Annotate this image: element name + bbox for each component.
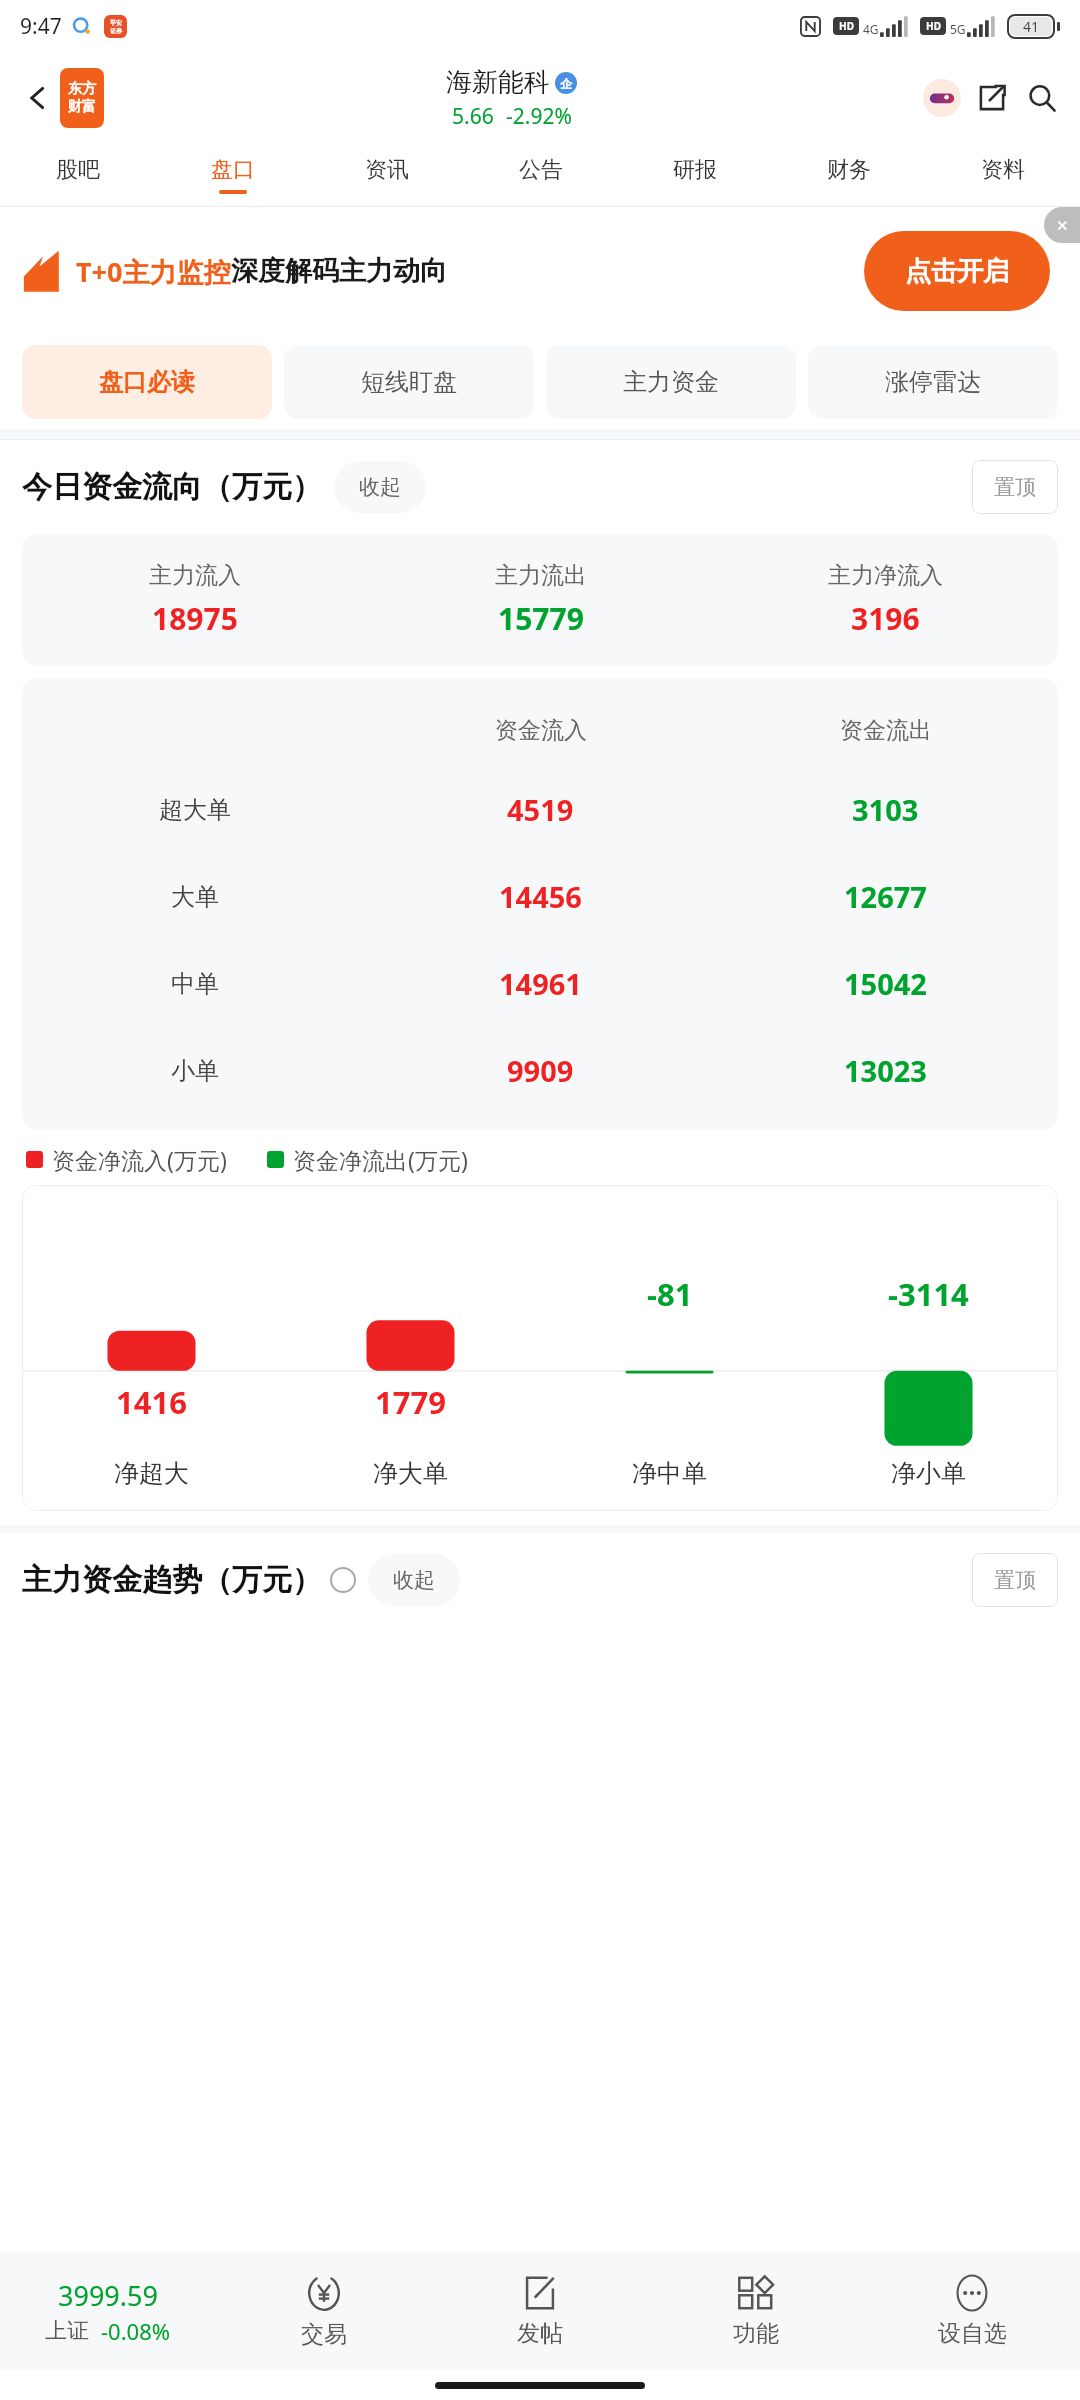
staticText: 净小单 [891,1458,966,1489]
staticText: 资料 [981,156,1025,184]
staticText: T+0主力监控 [76,253,231,290]
button[interactable]: 交易 [216,2252,432,2370]
staticText: 功能 [733,2319,779,2348]
staticText: 5.66 [452,102,494,131]
staticText: 4519 [507,790,574,829]
staticText: HD [839,19,854,33]
staticText: 小单 [171,1056,219,1086]
staticText: 净超大 [114,1458,189,1489]
staticText: 今日资金流向（万元） [22,468,322,506]
button[interactable]: 收起 [334,461,426,513]
staticText: 净大单 [373,1458,448,1489]
staticText: -2.92% [506,102,572,131]
staticText: 中单 [171,969,219,999]
staticText: 净中单 [632,1458,707,1489]
button[interactable]: 置顶 [972,1553,1058,1607]
button[interactable]: 设自选 [864,2252,1080,2370]
staticText: 主力资金趋势（万元） [22,1561,322,1599]
staticText: 主力资金 [623,367,719,397]
staticText: 大单 [171,882,219,912]
staticText: 涨停雷达 [885,367,981,397]
staticText: -0.08% [101,2316,171,2346]
button[interactable]: 资料 [926,144,1080,206]
staticText: 9:47 [20,12,62,41]
staticText: 财富 [68,98,96,116]
staticText: 14456 [499,877,582,916]
staticText: 收起 [393,1567,435,1593]
button[interactable]: 财务 [772,144,926,206]
staticText: 公告 [519,156,563,184]
staticText: 9909 [507,1051,574,1090]
staticText: 收起 [359,474,401,500]
button[interactable]: 研报 [618,144,772,206]
button[interactable]: 涨停雷达 [808,345,1058,419]
staticText: 3196 [851,598,920,639]
staticText: 4G [863,21,879,37]
button[interactable]: Back [16,76,60,120]
button[interactable]: 发帖 [432,2252,648,2370]
staticText: 3103 [852,790,919,829]
button[interactable]: 主力资金 [546,345,796,419]
staticText: 海新能科 [446,66,550,99]
staticText: 资金净流入(万元) [52,1144,227,1175]
button[interactable]: 1416 [22,1185,1058,1511]
button[interactable]: Close ad [1044,207,1080,243]
staticText: 主力流入 [149,561,241,590]
staticText: 交易 [301,2320,347,2349]
staticText: 短线盯盘 [361,367,457,397]
button[interactable]: Share [970,76,1014,120]
button[interactable]: 置顶 [972,460,1058,514]
staticText: 12677 [844,877,927,916]
staticText: 研报 [673,156,717,184]
staticText: 主力净流入 [828,561,943,590]
staticText: 1779 [375,1381,446,1423]
staticText: 13023 [844,1051,927,1090]
staticText: 41 [1023,17,1040,36]
staticText: -3114 [888,1273,969,1315]
staticText: 5G [950,21,966,37]
button[interactable]: 3999.59 [0,2252,216,2370]
staticText: 证券 [110,27,122,35]
staticText: 盘口必读 [99,367,195,397]
staticText: 股吧 [56,156,100,184]
button[interactable]: Search [1020,76,1064,120]
staticText: 15779 [498,598,584,639]
staticText: 18975 [152,598,238,639]
button[interactable]: 点击开启 [864,231,1050,311]
staticText: 资讯 [365,156,409,184]
staticText: ✕ [1056,217,1069,234]
staticText: 资金净流出(万元) [293,1144,468,1175]
staticText: 设自选 [938,2319,1007,2348]
staticText: 主力流出 [495,561,587,590]
staticText: 置顶 [994,474,1036,500]
staticText: 财务 [827,156,871,184]
staticText: 3999.59 [58,2277,158,2314]
button[interactable]: 东方财富 [60,68,104,128]
button[interactable]: 主力流入 [22,534,1058,666]
staticText: 超大单 [159,795,231,825]
staticText: 置顶 [994,1567,1036,1593]
button[interactable]: 资金流入 [22,678,1058,1130]
staticText: 发帖 [517,2319,563,2348]
staticText: 企 [560,76,572,91]
staticText: 盘口 [211,156,255,184]
button[interactable]: 公告 [464,144,618,206]
staticText: 15042 [844,964,927,1003]
staticText: 资金流入 [495,716,587,745]
button[interactable]: 盘口必读 [22,345,272,419]
staticText: HD [926,19,941,33]
staticText: 1416 [116,1381,187,1423]
button[interactable]: 功能 [648,2252,864,2370]
staticText: 平安 [110,19,122,27]
button[interactable]: 股吧 [0,144,155,206]
staticText: 深度解码主力动向 [231,254,447,288]
staticText: 14961 [499,964,582,1003]
button[interactable]: 短线盯盘 [284,345,534,419]
staticText: 上证 [45,2317,89,2345]
staticText: 点击开启 [905,255,1009,288]
button[interactable]: 资讯 [310,144,464,206]
button[interactable]: 盘口 [155,144,310,206]
button[interactable]: 收起 [368,1554,460,1606]
staticText: 东方 [68,80,96,98]
button[interactable]: AI assistant [920,76,964,120]
